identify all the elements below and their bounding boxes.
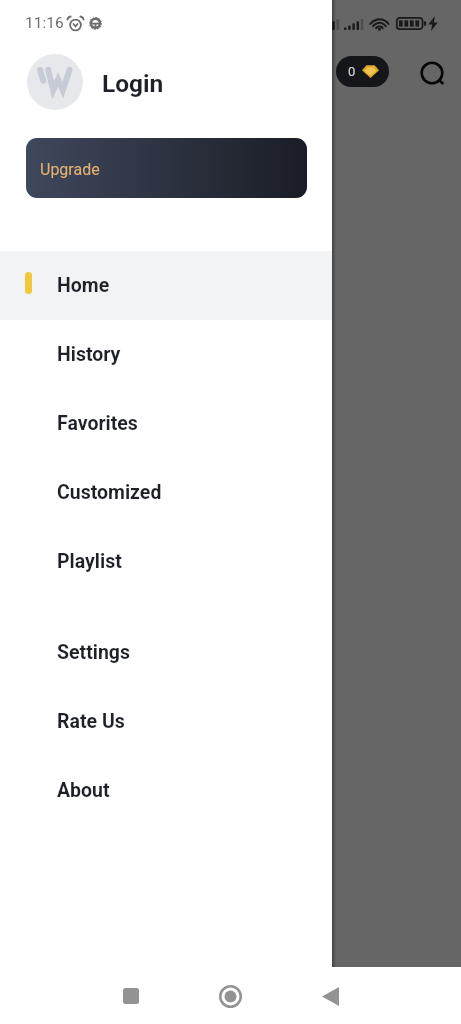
button[interactable]: Settings [0, 618, 332, 687]
staticText: Rate Us [57, 710, 125, 733]
button[interactable]: Coins [336, 56, 389, 87]
button[interactable]: About [0, 756, 332, 825]
button[interactable]: Search [409, 50, 449, 90]
staticText: Favorites [57, 412, 138, 435]
button[interactable]: Home [206, 972, 254, 1020]
button[interactable]: History [0, 320, 332, 389]
staticText: Home [57, 274, 110, 297]
button[interactable]: Customized [0, 458, 332, 527]
staticText: About [57, 779, 110, 802]
button[interactable]: Recent apps [107, 972, 155, 1020]
button[interactable]: Back [306, 972, 354, 1020]
staticText: 0 [348, 64, 356, 79]
button[interactable]: Home [0, 251, 332, 320]
staticText: 11:16 [25, 14, 64, 32]
staticText: Upgrade [40, 160, 100, 179]
button[interactable]: Profile [27, 54, 83, 110]
staticText: Customized [57, 481, 162, 504]
button[interactable]: Playlist [0, 527, 332, 596]
button[interactable]: Login [102, 69, 164, 98]
button[interactable]: Rate Us [0, 687, 332, 756]
staticText: History [57, 343, 121, 366]
button[interactable]: Favorites [0, 389, 332, 458]
staticText: Settings [57, 641, 130, 664]
button[interactable]: Upgrade [26, 138, 307, 198]
staticText: Playlist [57, 550, 122, 573]
button[interactable]: Close navigation drawer [0, 0, 461, 967]
